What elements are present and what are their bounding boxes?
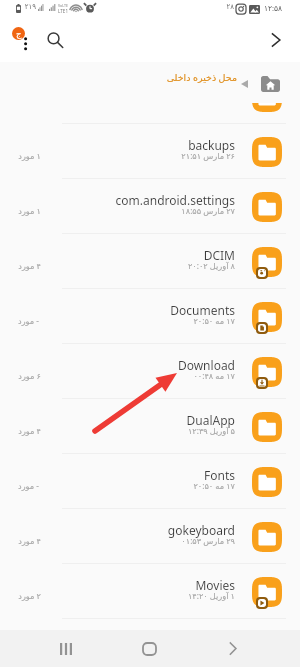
button[interactable]: com.android.settings [0,179,300,234]
staticText: ۶ مورد [18,370,41,381]
staticText: ۱ مورد [18,150,41,161]
staticText: ۱ مورد [18,205,41,216]
staticText: ۱۷ مه ۲۰:۵۰ [60,480,235,491]
button[interactable]: Recents [48,636,84,661]
button[interactable]: Search [40,25,70,55]
button[interactable]: gokeyboard [0,509,300,564]
staticText: - مورد [18,480,39,491]
staticText: DCIM [60,247,235,263]
staticText: ۴ مورد [18,535,41,546]
staticText: ۲۹ مارس ۰۱:۵۳ [60,535,235,546]
button[interactable]: Documents [0,289,300,344]
button[interactable]: Home [131,636,167,661]
button[interactable]: DCIM [0,234,300,289]
staticText: Download [60,357,235,373]
staticText: ۲۶ مارس ۲۱:۵۱ [60,150,235,161]
staticText: ۱۷ مه ۲۰:۵۰ [60,315,235,326]
button[interactable]: محل ذخیره داخلی [100,71,237,84]
staticText: com.android.settings [60,192,235,208]
button[interactable]: Back [215,636,251,661]
button[interactable]: backups [0,124,300,179]
staticText: Movies [60,577,235,593]
button[interactable]: Back [261,25,291,55]
staticText: ۲۷ مارس ۱۸:۵۵ [60,205,235,216]
staticText: ۱۲:۵۸ [263,3,282,13]
staticText: ۲۱۹ [24,3,36,11]
staticText: ۴ مورد [18,425,41,436]
staticText: - مورد [18,315,39,326]
button[interactable]: Download [0,344,300,399]
staticText: Documents [60,302,235,318]
staticText: DualApp [60,412,235,428]
staticText: LTE1 [58,8,69,14]
staticText: VoLTE [58,3,69,8]
button[interactable]: Movies [0,564,300,619]
staticText: ۲ مورد [18,590,41,601]
staticText: محل ذخیره داخلی [100,71,237,84]
button[interactable]: DualApp [0,399,300,454]
button[interactable]: More options [4,23,38,57]
staticText: ۱ آوریل ۱۴:۲۰ [60,590,235,601]
button[interactable]: Fonts [0,454,300,509]
staticText: ۵ آوریل ۱۲:۳۹ [60,425,235,436]
staticText: gokeyboard [60,522,235,538]
staticText: ۸ آوریل ۲۰:۰۲ [60,260,235,271]
staticText: ج [16,29,22,39]
staticText: Fonts [60,467,235,483]
staticText: backups [60,137,235,153]
staticText: ۲۸ [226,3,234,11]
staticText: ۱۷ مه ۰۰:۴۸ [60,370,235,381]
staticText: ۴ مورد [18,260,41,271]
